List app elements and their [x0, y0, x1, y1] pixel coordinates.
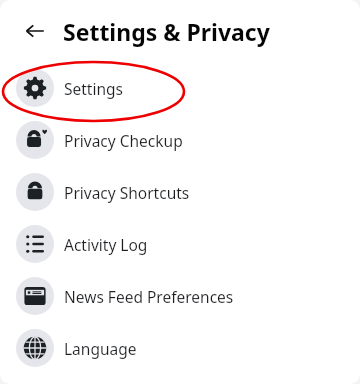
button[interactable]: Settings — [0, 62, 360, 114]
staticText: News Feed Preferences — [64, 286, 234, 307]
button[interactable]: Privacy Shortcuts — [0, 166, 360, 218]
staticText: Activity Log — [64, 234, 148, 255]
button[interactable]: Language — [0, 322, 360, 374]
button[interactable]: News Feed Preferences — [0, 270, 360, 322]
staticText: Privacy Shortcuts — [64, 182, 190, 203]
staticText: Settings & Privacy — [63, 16, 270, 47]
button[interactable]: Back — [22, 18, 48, 44]
button[interactable]: Activity Log — [0, 218, 360, 270]
button[interactable]: Privacy Checkup — [0, 114, 360, 166]
staticText: Language — [64, 338, 137, 359]
staticText: Settings — [64, 78, 123, 99]
staticText: Privacy Checkup — [64, 130, 183, 151]
